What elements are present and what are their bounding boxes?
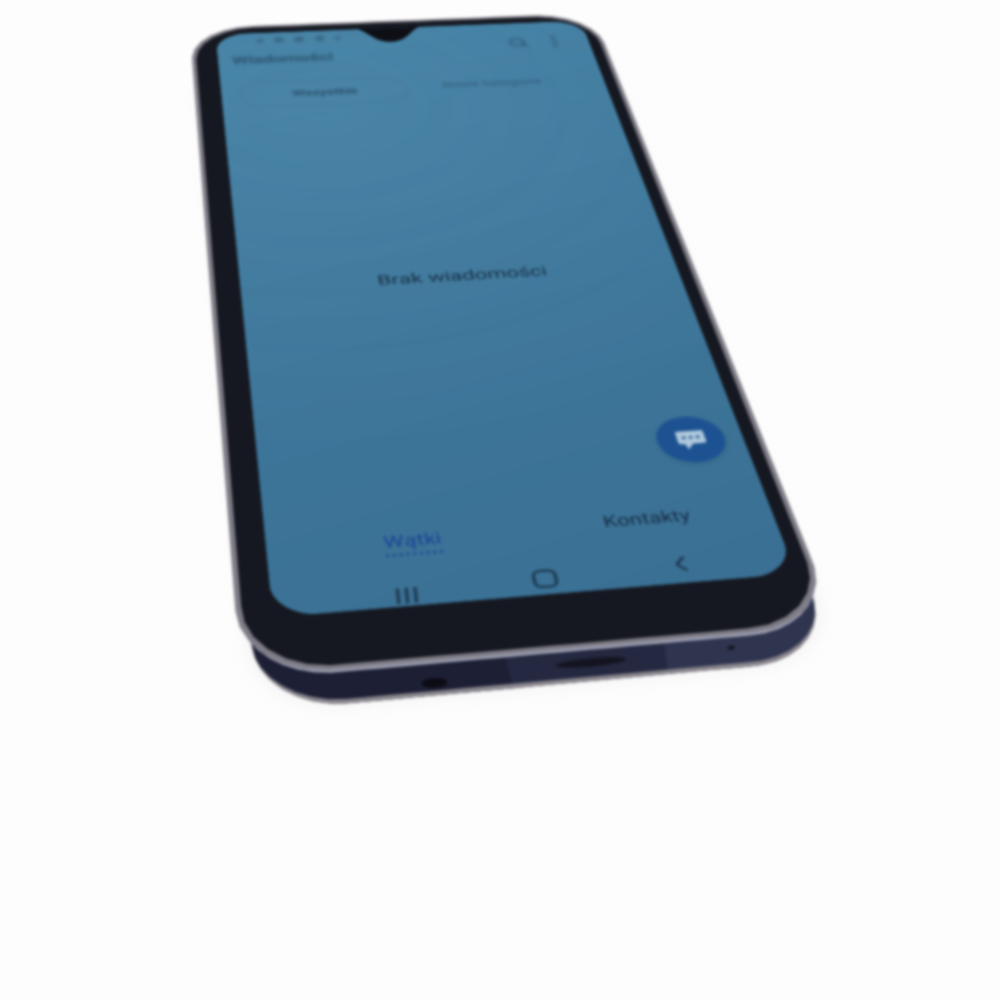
other: Photo of a phone showing the Messages ap… (0, 0, 1000, 1000)
